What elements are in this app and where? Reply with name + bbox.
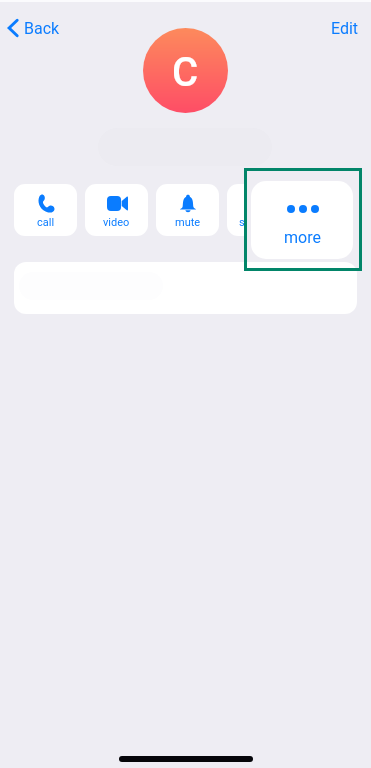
button[interactable] (14, 262, 357, 314)
button[interactable]: Edit (325, 14, 365, 42)
staticText: video (103, 216, 130, 229)
button[interactable]: more (251, 181, 353, 259)
button[interactable]: video (85, 184, 148, 236)
staticText: more (284, 228, 321, 247)
button[interactable]: mute (156, 184, 219, 236)
button[interactable]: Back (4, 14, 62, 42)
staticText: speaker (239, 216, 244, 229)
button[interactable]: call (14, 184, 77, 236)
staticText: C (172, 49, 199, 96)
staticText: Back (24, 19, 60, 38)
staticText: call (37, 216, 55, 229)
staticText: mute (175, 216, 201, 229)
staticText: Edit (331, 19, 359, 38)
button[interactable]: speaker (227, 184, 244, 236)
